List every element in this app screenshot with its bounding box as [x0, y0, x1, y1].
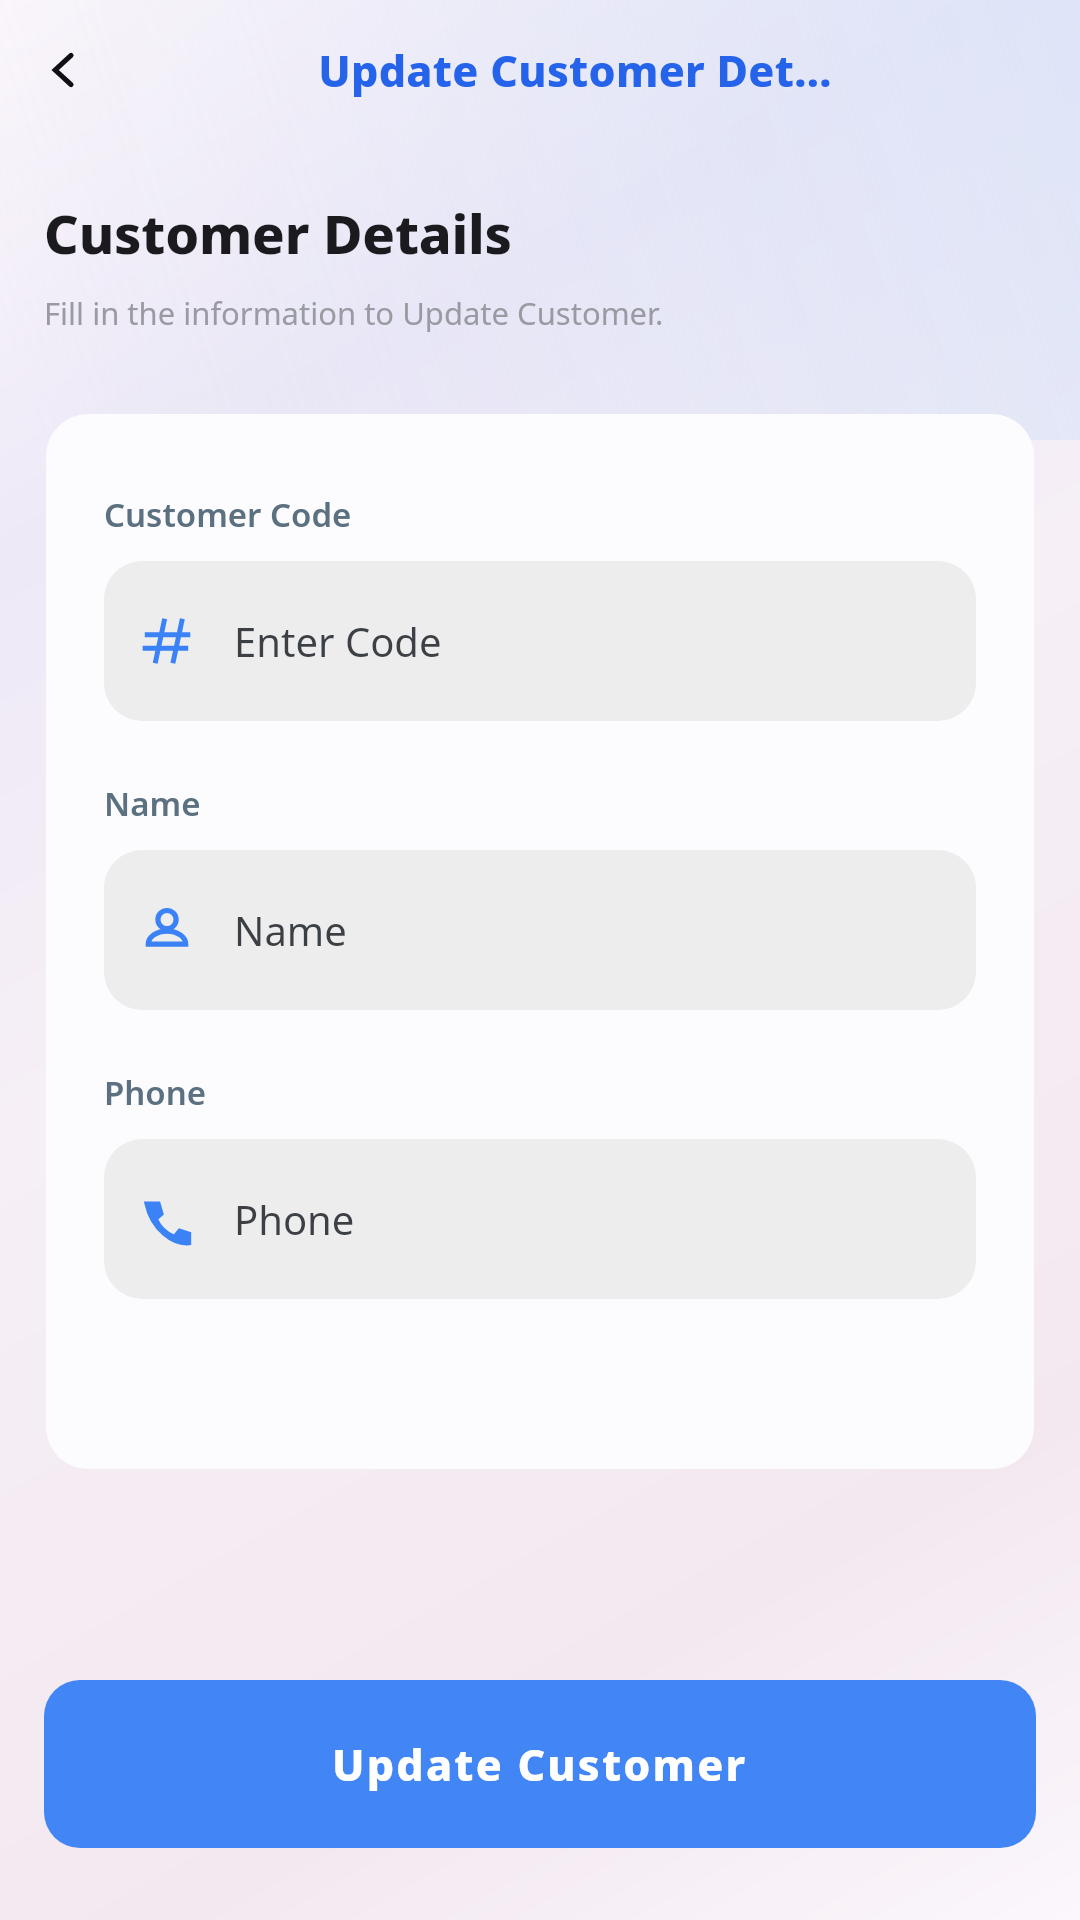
staticText: Name: [104, 781, 201, 826]
staticText: Update Customer: [332, 1735, 748, 1794]
staticText: Enter Code: [234, 614, 442, 668]
staticText: Update Customer Det...: [318, 41, 832, 100]
button[interactable]: Update Customer: [44, 1680, 1036, 1848]
staticText: Customer Details: [44, 196, 512, 270]
staticText: Name: [234, 903, 347, 957]
staticText: Phone: [104, 1070, 207, 1115]
staticText: Customer Code: [104, 492, 352, 537]
staticText: Fill in the information to Update Custom…: [44, 292, 664, 334]
button[interactable]: Name: [104, 850, 976, 1010]
staticText: Phone: [234, 1192, 355, 1246]
button[interactable]: Enter Code: [104, 561, 976, 721]
button[interactable]: Back: [24, 30, 104, 110]
button[interactable]: Phone: [104, 1139, 976, 1299]
